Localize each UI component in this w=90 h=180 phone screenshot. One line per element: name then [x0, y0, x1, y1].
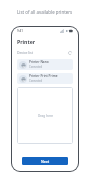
staticText: Connected	[29, 65, 43, 69]
staticText: Printer Print Prime	[29, 74, 58, 78]
staticText: List of all available printers	[17, 9, 73, 15]
staticText: Device list	[17, 50, 33, 55]
button[interactable]: Printer Nano	[17, 59, 73, 70]
staticText: Connected	[29, 79, 43, 83]
button[interactable]: Refresh device list	[66, 49, 73, 56]
button[interactable]: Drag here	[17, 87, 73, 144]
button[interactable]: Next	[22, 157, 68, 165]
staticText: Printer Nano	[29, 60, 49, 64]
staticText: 9:41	[17, 29, 23, 33]
button[interactable]: Printer Print Prime	[17, 73, 73, 84]
staticText: Next	[41, 159, 50, 164]
staticText: Printer	[17, 38, 36, 45]
staticText: Drag here	[38, 114, 53, 118]
